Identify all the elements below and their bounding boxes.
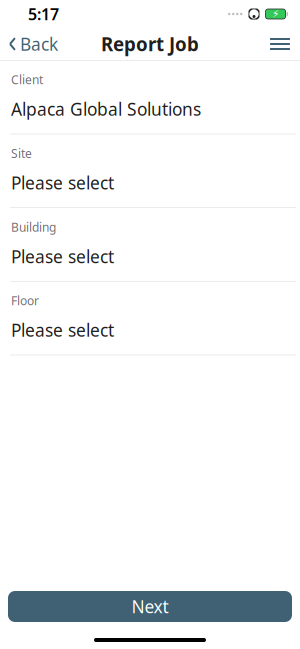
button[interactable]: Floor [0,282,300,355]
staticText: Alpaca Global Solutions [11,98,201,121]
staticText: Please select [11,171,114,194]
button[interactable]: Next [8,591,292,622]
staticText: Please select [11,245,114,268]
staticText: Floor [11,293,39,309]
staticText: Client [11,72,43,88]
staticText: Next [131,595,168,618]
button[interactable]: Client [0,61,300,134]
staticText: ⚡︎ [272,8,279,20]
staticText: Report Job [101,32,199,56]
staticText: Site [11,145,32,161]
staticText: Please select [11,319,114,342]
staticText: Back [20,32,58,55]
button[interactable]: Back [0,26,58,61]
staticText: Building [11,219,56,235]
button[interactable]: Building [0,208,300,282]
staticText: 5:17 [28,3,59,25]
button[interactable]: Menu [270,32,300,56]
button[interactable]: Site [0,134,300,208]
